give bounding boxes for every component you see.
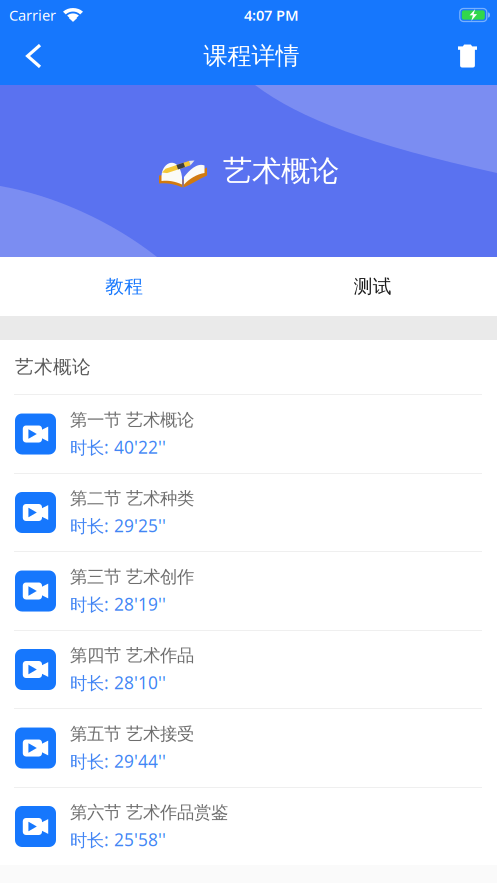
button[interactable]: 第二节 艺术种类 [0, 473, 497, 551]
button[interactable]: 教程 [0, 257, 248, 316]
staticText: 时长: 29'25'' [70, 514, 166, 537]
button[interactable]: 第三节 艺术创作 [0, 551, 497, 630]
staticText: 时长: 40'22'' [70, 436, 166, 459]
staticText: 艺术概论 [223, 153, 339, 189]
staticText: Carrier [9, 5, 56, 25]
staticText: 时长: 28'19'' [70, 593, 166, 616]
staticText: 第五节 艺术接受 [70, 723, 194, 745]
staticText: 第六节 艺术作品赏鉴 [70, 802, 228, 823]
button[interactable]: 第一节 艺术概论 [0, 394, 497, 473]
staticText: 教程 [105, 275, 143, 298]
button[interactable]: 第五节 艺术接受 [0, 708, 497, 787]
staticText: 第一节 艺术概论 [70, 409, 194, 431]
staticText: 第四节 艺术作品 [70, 645, 194, 666]
button[interactable]: Back [0, 28, 82, 83]
button[interactable]: 测试 [248, 257, 497, 316]
staticText: 第二节 艺术种类 [70, 488, 194, 509]
button[interactable]: 第四节 艺术作品 [0, 630, 497, 708]
staticText: 时长: 28'10'' [70, 671, 166, 694]
staticText: 4:07 PM [244, 5, 299, 25]
button[interactable]: Delete [421, 28, 497, 83]
staticText: 时长: 29'44'' [70, 750, 166, 773]
staticText: 第三节 艺术创作 [70, 566, 194, 588]
staticText: 时长: 25'58'' [70, 828, 166, 851]
button[interactable]: 第六节 艺术作品赏鉴 [0, 787, 497, 865]
staticText: 艺术概论 [15, 355, 91, 378]
staticText: 测试 [354, 275, 392, 298]
staticText: 课程详情 [203, 41, 299, 71]
